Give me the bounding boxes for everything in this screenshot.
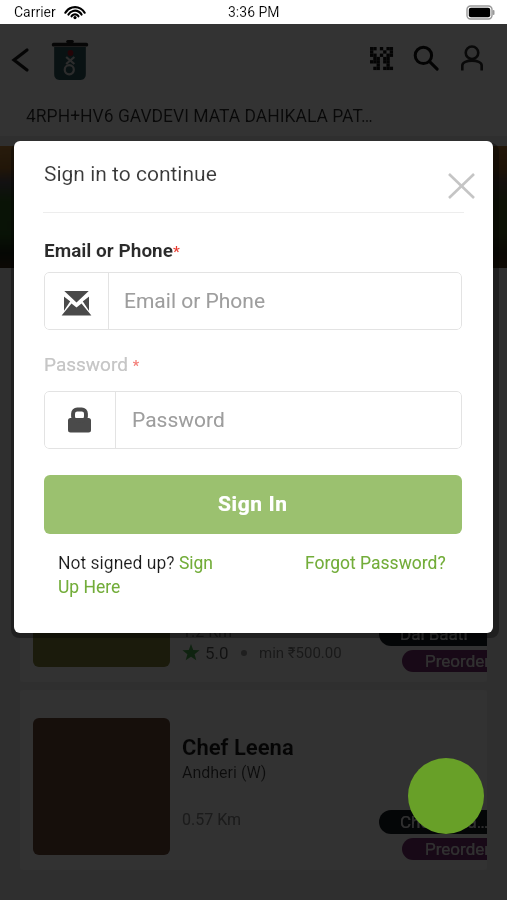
staticText: 5.0	[205, 643, 229, 663]
button[interactable]: Scan QR code	[359, 36, 403, 80]
staticText: Chef Leena	[182, 735, 294, 761]
button[interactable]: Sign In	[44, 475, 462, 534]
staticText: Preorder	[425, 651, 487, 671]
staticText: Email or Phone*	[44, 239, 180, 261]
button[interactable]: Preorder	[402, 650, 487, 672]
staticText: Forgot Password?	[305, 553, 446, 574]
staticText: Sign in to continue	[44, 162, 217, 187]
button[interactable]: Chef Leena	[20, 690, 487, 870]
staticText: Not signed up? Sign Up Here	[58, 553, 226, 597]
button[interactable]: Close	[438, 163, 484, 209]
staticText: Password *	[44, 353, 140, 375]
button[interactable]: Email or Phone	[44, 272, 462, 330]
button[interactable]: Preorder	[402, 838, 487, 860]
button[interactable]: Chole Bha…	[379, 810, 487, 834]
staticText: Andheri (W)	[182, 763, 267, 782]
button[interactable]: Not signed up? Sign Up Here	[58, 553, 226, 597]
staticText: Chef Dipti	[182, 547, 280, 573]
staticText: Chole Bha…	[400, 812, 487, 832]
staticText: 0.57 Km	[182, 810, 242, 829]
staticText: Dal Baati	[400, 624, 468, 644]
staticText: 3:36 PM	[228, 4, 280, 20]
button[interactable]: Dal Baati	[379, 622, 487, 646]
staticText: min ₹500.00	[259, 644, 342, 662]
button[interactable]: Password	[44, 391, 462, 449]
button[interactable]: Chef Dipti	[20, 502, 487, 682]
button[interactable]: Add	[408, 758, 484, 834]
staticText: Sign In	[218, 492, 288, 517]
staticText: Password	[132, 408, 225, 433]
staticText: Carrier	[14, 4, 56, 20]
staticText: 4RPH+HV6 GAVDEVI MATA DAHIKALA PAT…	[26, 106, 373, 127]
staticText: 1.2 Km	[182, 622, 233, 641]
button[interactable]: Forgot Password?	[305, 553, 446, 574]
button[interactable]: Search	[404, 36, 448, 80]
staticText: Preorder	[425, 839, 487, 859]
staticText: Email or Phone	[124, 289, 266, 314]
button[interactable]: Profile	[450, 36, 494, 80]
button[interactable]: Back	[2, 42, 38, 78]
